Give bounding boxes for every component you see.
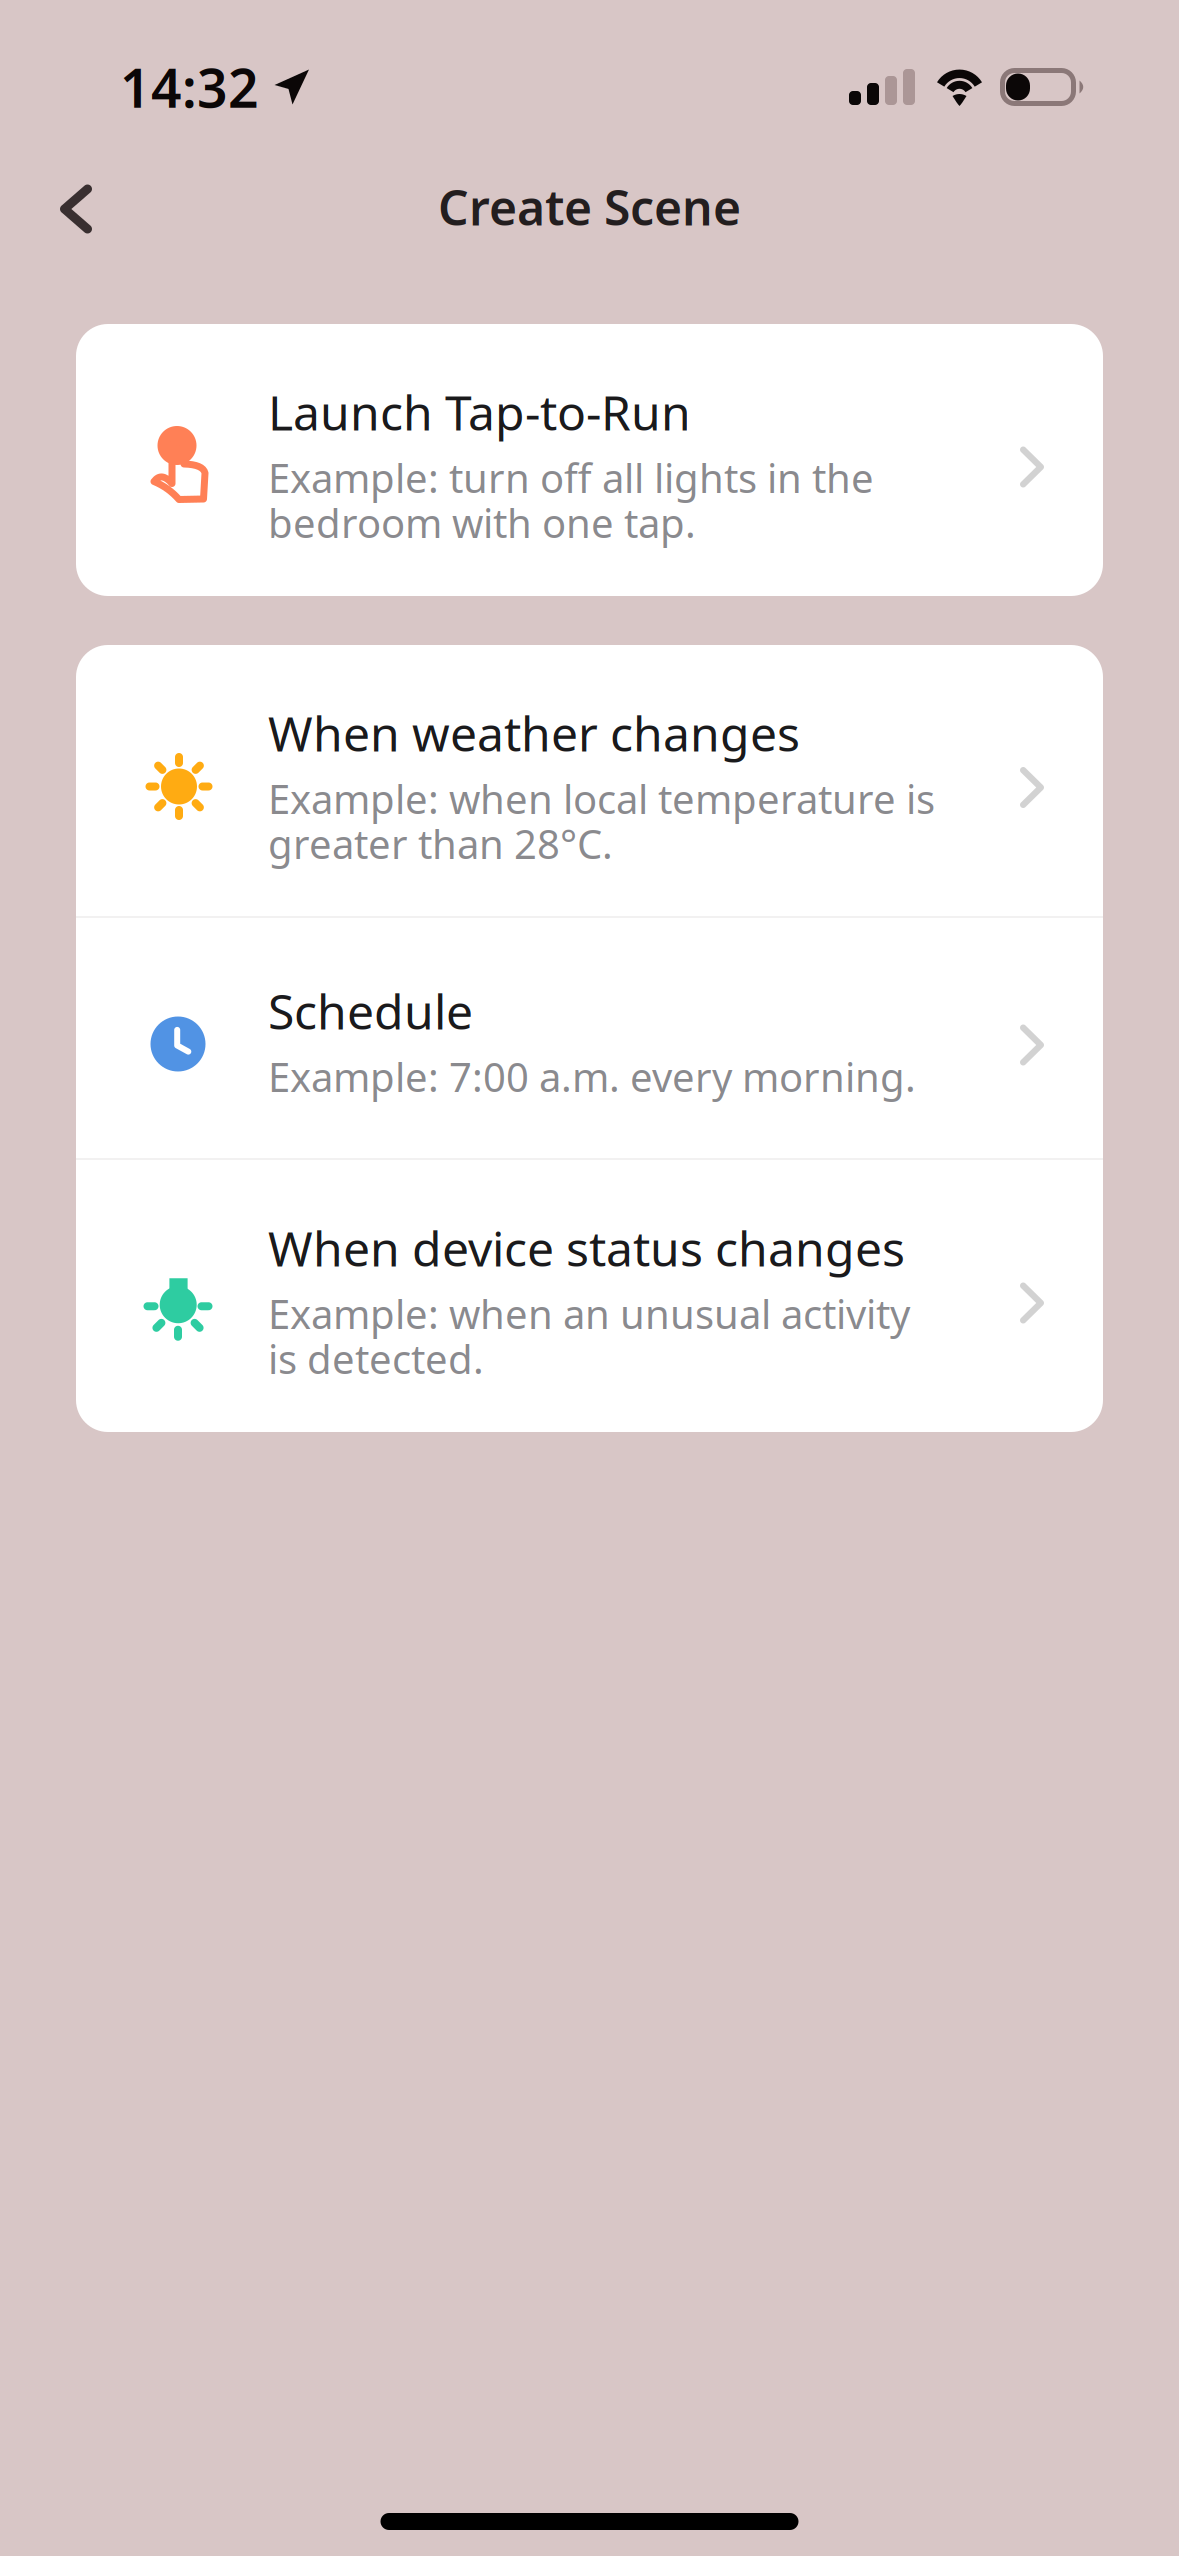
staticText: Example: 7:00 a.m. every morning. [268,1050,916,1103]
staticText: is detected. [268,1332,484,1385]
button[interactable]: When device status changes [76,1160,1103,1432]
button[interactable]: When weather changes [76,645,1103,916]
button[interactable]: Back [0,185,148,251]
staticText: Example: turn off all lights in the [268,451,874,504]
staticText: bedroom with one tap. [268,496,696,549]
staticText: Example: when local temperature is [268,772,935,825]
staticText: Create Scene [438,175,741,239]
button[interactable]: Schedule [76,918,1103,1158]
staticText: Launch Tap-to-Run [268,380,691,444]
staticText: greater than 28°C. [268,817,613,870]
button[interactable]: Launch Tap-to-Run [76,324,1103,596]
staticText: Example: when an unusual activity [268,1287,910,1340]
staticText: Schedule [268,979,473,1043]
staticText: 14:32 [120,52,259,122]
staticText: When weather changes [268,701,800,765]
staticText: When device status changes [268,1216,905,1280]
